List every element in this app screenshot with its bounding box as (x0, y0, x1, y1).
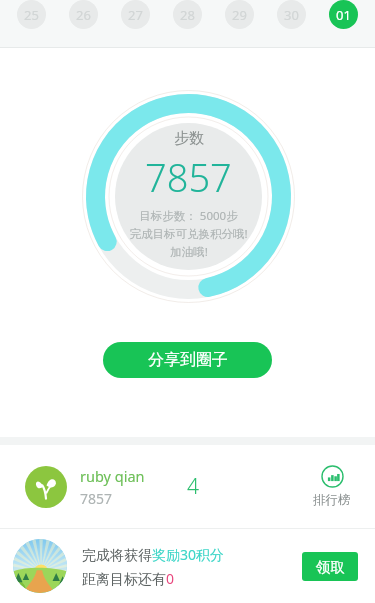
staticText: 28 (180, 6, 195, 24)
button[interactable]: 25 (17, 0, 46, 29)
staticText: 加油哦! (170, 244, 208, 260)
button[interactable]: 28 (173, 0, 202, 29)
staticText: 分享到圈子 (148, 350, 228, 370)
staticText: 距离目标还有0 (82, 569, 175, 588)
staticText: 29 (232, 6, 247, 24)
staticText: 30 (284, 6, 299, 24)
staticText: 01 (336, 6, 351, 24)
button[interactable]: 27 (121, 0, 150, 29)
staticText: 7857 (80, 489, 113, 508)
staticText: 27 (128, 6, 143, 24)
staticText: 目标步数： 5000步 (139, 208, 238, 224)
staticText: 4 (187, 472, 199, 501)
staticText: 排行榜 (313, 492, 351, 508)
button[interactable]: 26 (69, 0, 98, 29)
staticText: 25 (24, 6, 39, 24)
button[interactable]: ruby qian (0, 445, 375, 528)
button[interactable]: 29 (225, 0, 254, 29)
button[interactable]: 排行榜 (307, 462, 357, 511)
staticText: 完成将获得奖励30积分 (82, 545, 225, 564)
staticText: 完成目标可兑换积分哦! (129, 226, 248, 242)
button[interactable]: 领取 (302, 552, 358, 581)
staticText: 7857 (145, 151, 232, 203)
staticText: 领取 (316, 558, 345, 576)
staticText: ruby qian (80, 466, 145, 486)
button[interactable]: 01 (329, 0, 358, 29)
button[interactable]: 30 (277, 0, 306, 29)
button[interactable]: 分享到圈子 (103, 342, 272, 378)
staticText: 步数 (174, 129, 204, 148)
staticText: 26 (76, 6, 91, 24)
